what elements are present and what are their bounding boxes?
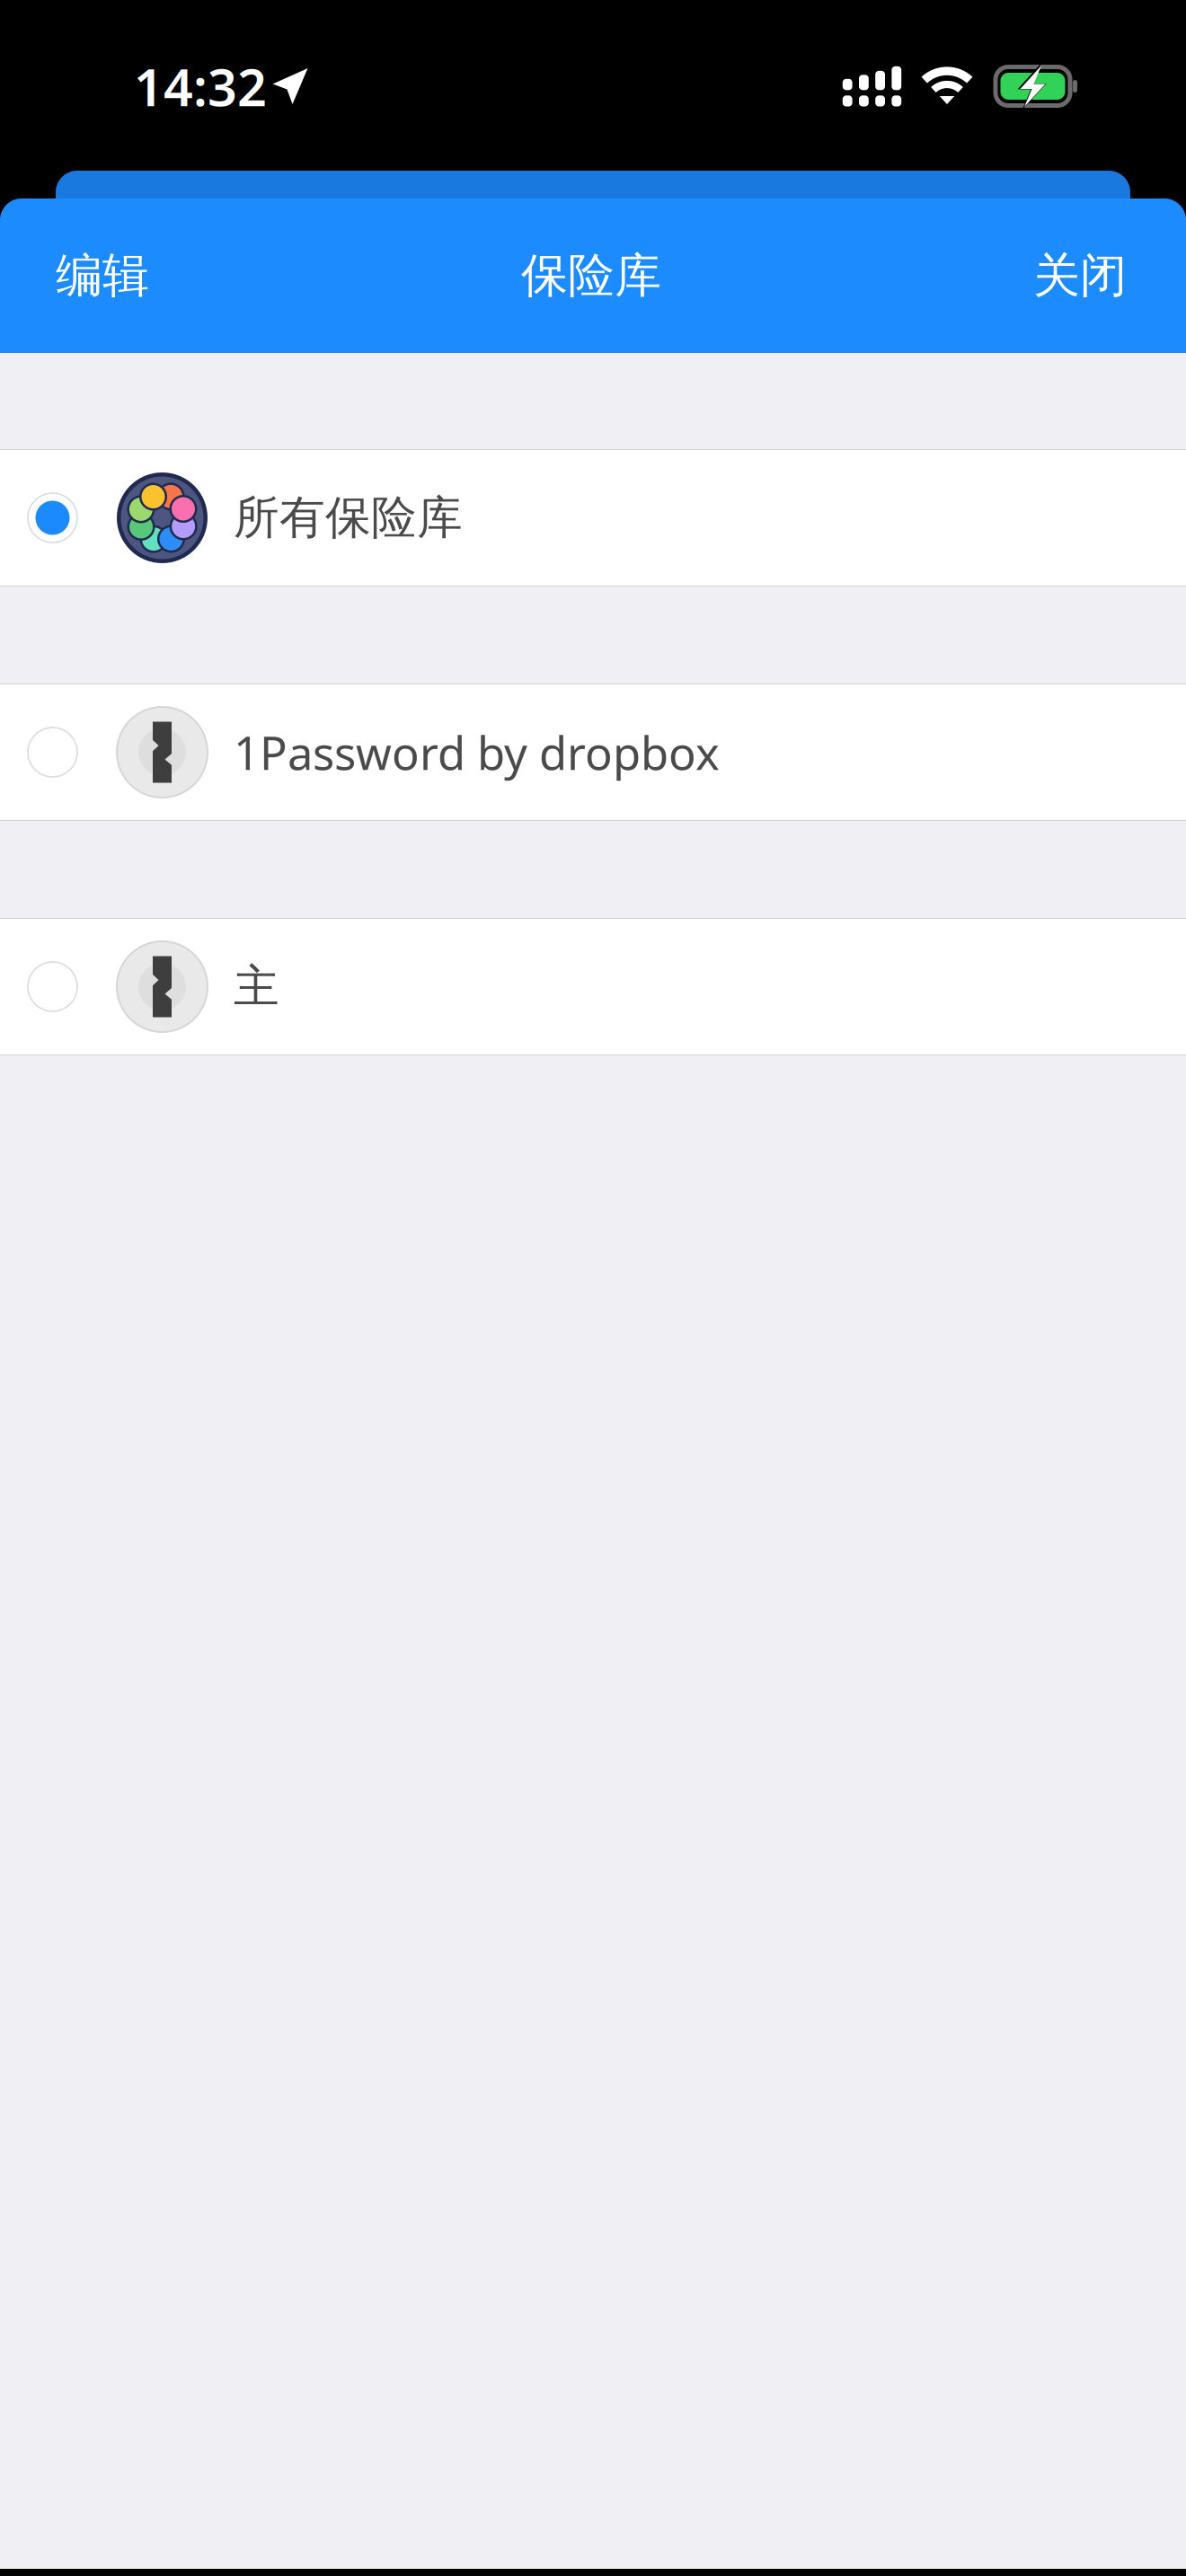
staticText: 主 bbox=[234, 959, 279, 1015]
staticText: 关闭 bbox=[1033, 247, 1127, 304]
staticText: 所有保险库 bbox=[234, 490, 463, 546]
button[interactable]: 编辑 bbox=[0, 222, 176, 330]
staticText: 1Password by dropbox bbox=[234, 722, 720, 783]
button[interactable]: 1Password by dropbox bbox=[0, 684, 1186, 821]
button[interactable]: 关闭 bbox=[1006, 222, 1186, 330]
button[interactable]: 所有保险库 bbox=[0, 449, 1186, 587]
staticText: 14:32 bbox=[134, 52, 267, 120]
button[interactable]: 主 bbox=[0, 918, 1186, 1055]
staticText: 编辑 bbox=[56, 247, 149, 304]
staticText: 保险库 bbox=[521, 247, 661, 304]
